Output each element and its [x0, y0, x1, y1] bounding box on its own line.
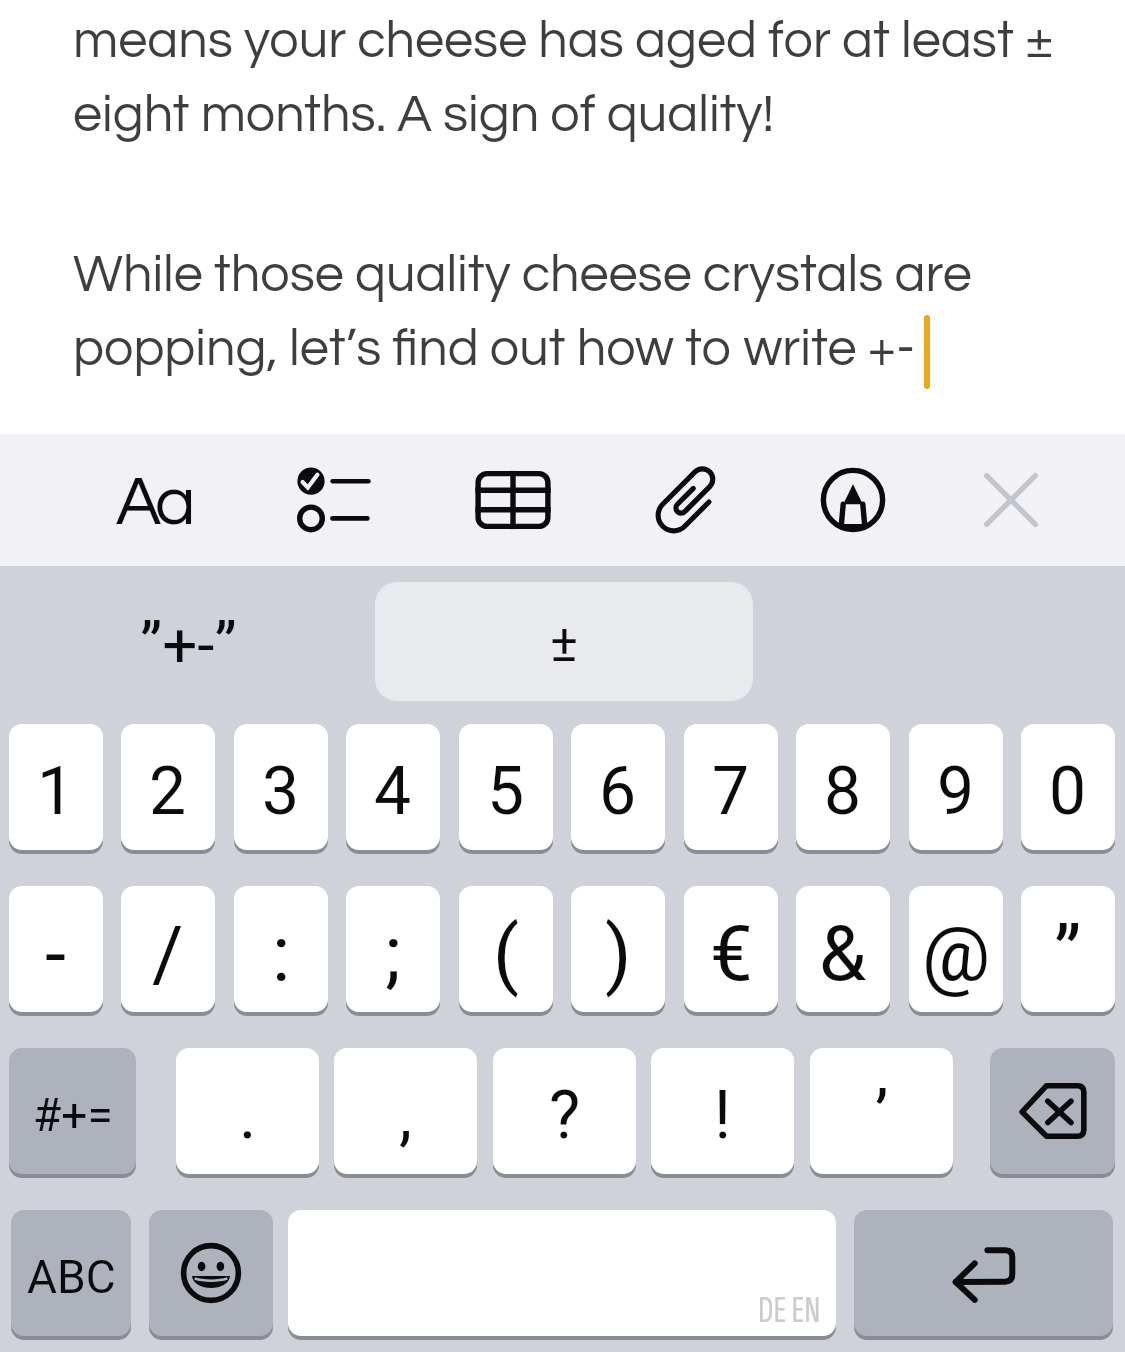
button[interactable]: 1 — [9, 724, 103, 850]
staticText: eight months. A sign of quality! — [73, 88, 774, 142]
staticText: ABC — [27, 1250, 116, 1304]
button[interactable]: Aa — [92, 434, 214, 566]
staticText: ± — [550, 613, 578, 674]
staticText: 7 — [712, 753, 750, 830]
button[interactable]: Backspace — [990, 1048, 1115, 1174]
staticText: While those quality cheese crystals are — [73, 248, 972, 302]
staticText: ( — [493, 909, 520, 998]
button[interactable]: ? — [493, 1048, 636, 1174]
button[interactable]: ± — [375, 582, 753, 701]
staticText: ! — [714, 1077, 732, 1154]
staticText: 6 — [599, 753, 637, 830]
staticText: ’ — [875, 1077, 889, 1154]
button[interactable]: 4 — [346, 724, 440, 850]
button[interactable]: , — [334, 1048, 477, 1174]
button[interactable]: - — [9, 886, 103, 1012]
button[interactable]: #+= — [9, 1048, 136, 1174]
button[interactable]: 6 — [571, 724, 665, 850]
staticText: popping, let’s find out how to write +- — [73, 322, 915, 376]
button[interactable]: . — [176, 1048, 319, 1174]
button[interactable]: 9 — [909, 724, 1003, 850]
staticText: 4 — [374, 753, 412, 830]
button[interactable]: 7 — [684, 724, 778, 850]
button[interactable]: € — [684, 886, 778, 1012]
staticText: 0 — [1049, 753, 1087, 830]
staticText: 8 — [824, 753, 862, 830]
staticText: / — [152, 909, 184, 998]
staticText: 5 — [487, 753, 525, 830]
staticText: ”+-” — [140, 608, 237, 681]
button[interactable]: Draw — [798, 434, 908, 566]
staticText: 2 — [149, 753, 187, 830]
button[interactable]: ( — [459, 886, 553, 1012]
staticText: ” — [1054, 909, 1082, 998]
staticText: ) — [605, 909, 632, 998]
button[interactable]: ) — [571, 886, 665, 1012]
staticText: means your cheese has aged for at least … — [73, 14, 1054, 68]
button[interactable]: Close — [956, 434, 1066, 566]
button[interactable]: ; — [346, 886, 440, 1012]
button[interactable]: Emoji — [149, 1210, 273, 1336]
button[interactable]: ABC — [11, 1210, 131, 1336]
staticText: 1 — [37, 753, 75, 830]
staticText: 9 — [937, 753, 975, 830]
button[interactable]: Insert table — [458, 434, 568, 566]
button[interactable]: ”+-” — [128, 582, 248, 700]
staticText: #+= — [33, 1088, 113, 1142]
staticText: : — [272, 909, 291, 998]
button[interactable]: Checklist — [278, 434, 388, 566]
button[interactable]: Space — [288, 1210, 836, 1336]
button[interactable]: & — [796, 886, 890, 1012]
staticText: . — [239, 1077, 257, 1154]
button[interactable]: 0 — [1021, 724, 1115, 850]
staticText: DE EN — [758, 1287, 821, 1334]
button[interactable]: @ — [909, 886, 1003, 1012]
button[interactable]: ” — [1021, 886, 1115, 1012]
staticText: ? — [549, 1077, 581, 1154]
button[interactable]: / — [121, 886, 215, 1012]
staticText: , — [399, 1077, 412, 1154]
button[interactable]: 2 — [121, 724, 215, 850]
button[interactable]: 5 — [459, 724, 553, 850]
staticText: @ — [922, 909, 991, 998]
button[interactable]: Attach file — [634, 434, 744, 566]
staticText: - — [45, 909, 67, 998]
button[interactable]: 8 — [796, 724, 890, 850]
button[interactable]: ’ — [810, 1048, 953, 1174]
staticText: € — [710, 909, 753, 998]
staticText: & — [819, 909, 867, 998]
button[interactable]: Enter — [854, 1210, 1113, 1336]
staticText: 3 — [262, 753, 300, 830]
button[interactable]: 3 — [234, 724, 328, 850]
button[interactable]: ! — [651, 1048, 794, 1174]
button[interactable]: : — [234, 886, 328, 1012]
staticText: Aa — [116, 468, 190, 538]
staticText: ; — [385, 909, 402, 998]
